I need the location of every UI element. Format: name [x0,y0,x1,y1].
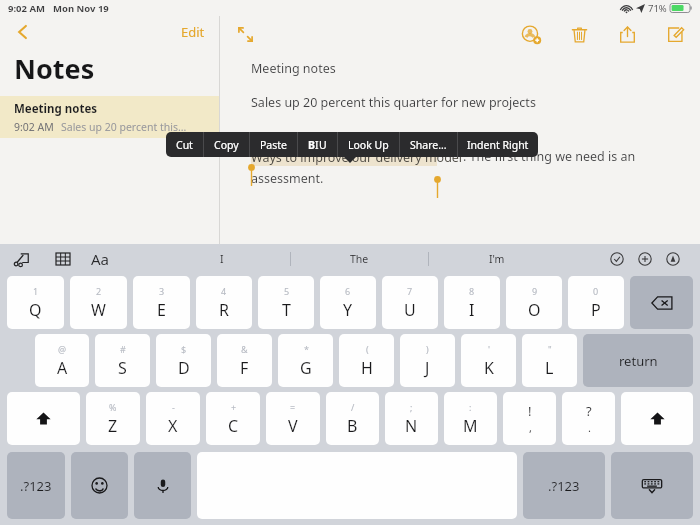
button[interactable]: ( [339,334,394,387]
button[interactable]: Back [10,19,36,45]
button[interactable]: @ [35,334,89,387]
button[interactable]: ' [461,334,516,387]
staticText: N [405,415,418,437]
staticText: W [91,299,106,321]
staticText: # [120,343,126,355]
button[interactable]: .?123 [7,452,65,519]
button[interactable]: / [326,392,379,445]
button[interactable]: Shift [621,392,693,445]
button[interactable]: 3 [133,276,190,329]
staticText: Cut [176,138,193,152]
button[interactable]: ) [400,334,455,387]
button[interactable]: : [444,392,497,445]
staticText: . The first thing we need is an internal [463,148,684,167]
staticText: L [545,357,554,379]
button[interactable]: Table [52,248,74,270]
staticText: & [241,343,248,355]
button[interactable]: Add people [518,21,544,47]
staticText: D [178,357,190,379]
button[interactable]: 1 [7,276,64,329]
button[interactable]: 4 [196,276,252,329]
button[interactable]: Share… [400,132,457,157]
button[interactable]: Cut [166,132,203,157]
staticText: Sales up 20 percent this… [61,120,187,134]
button[interactable]: 8 [444,276,500,329]
staticText: A [57,357,68,379]
button[interactable]: Add [634,248,656,270]
staticText: 9 [532,285,538,297]
button[interactable]: Expand [232,21,258,47]
button[interactable]: I [212,250,232,268]
staticText: 1 [33,285,39,297]
button[interactable]: % [86,392,140,445]
staticText: M [463,415,478,437]
button[interactable]: 6 [320,276,376,329]
staticText: Notes [14,50,95,87]
button[interactable]: $ [156,334,211,387]
staticText: Edit [181,23,205,41]
button[interactable]: 9 [506,276,562,329]
button[interactable]: Copy [204,132,249,157]
staticText: O [528,299,541,321]
button[interactable]: .?123 [523,452,605,519]
staticText: 8 [469,285,475,297]
staticText: ! [528,402,532,420]
button[interactable]: * [278,334,333,387]
staticText: I [220,252,224,266]
staticText: Y [343,299,353,321]
button[interactable]: Shift [7,392,80,445]
button[interactable]: I'm [481,250,513,268]
staticText: 3 [159,285,165,297]
staticText: Aa [91,249,110,269]
staticText: B [308,138,315,152]
button[interactable]: Dictate [134,452,191,519]
button[interactable]: Aa [88,246,113,272]
button[interactable]: 0 [568,276,624,329]
staticText: = [290,401,296,413]
button[interactable]: 2 [70,276,127,329]
staticText: assessment. [251,170,324,187]
button[interactable]: & [217,334,272,387]
button[interactable]: Markup [10,248,32,270]
button[interactable]: Backspace [630,276,693,329]
button[interactable]: Draw [662,248,684,270]
button[interactable]: = [266,392,320,445]
staticText: .?123 [548,477,580,495]
button[interactable]: New note [662,21,688,47]
button[interactable]: return [583,334,693,387]
button[interactable]: Indent Right [458,132,538,157]
staticText: 71% [648,2,667,15]
button[interactable]: B [298,132,337,157]
button[interactable]: Look Up [338,132,399,157]
button[interactable]: Meeting notes [0,96,219,138]
staticText: I [315,138,319,152]
staticText: ? [586,402,592,420]
button[interactable]: Edit [177,19,209,45]
button[interactable]: Paste [250,132,297,157]
staticText: X [168,415,178,437]
button[interactable]: # [95,334,150,387]
button[interactable]: + [206,392,260,445]
staticText: U [404,299,416,321]
staticText: 4 [221,285,227,297]
button[interactable]: ! [503,392,556,445]
staticText: 0 [593,285,599,297]
button[interactable]: Emoji [71,452,128,519]
button[interactable]: ; [385,392,438,445]
button[interactable]: 5 [258,276,314,329]
button[interactable]: 7 [382,276,438,329]
staticText: K [484,357,494,379]
button[interactable]: - [146,392,200,445]
staticText: @ [58,343,67,355]
button[interactable]: ? [562,392,615,445]
staticText: ( [366,343,369,355]
button[interactable]: Hide keyboard [611,452,693,519]
button[interactable]: Delete [566,21,592,47]
button[interactable]: The [342,250,377,268]
staticText: Sales up 20 percent this quarter for new… [251,94,536,111]
button[interactable]: Done [606,248,628,270]
staticText: Share… [410,138,447,152]
button[interactable]: " [522,334,577,387]
button[interactable]: Share [614,21,640,47]
